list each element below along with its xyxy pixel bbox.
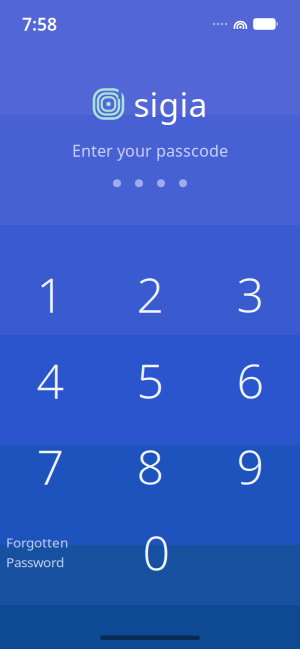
staticText: 9 [236, 434, 263, 498]
staticText: Enter your passcode [72, 140, 228, 161]
button[interactable]: 3 [200, 251, 300, 337]
staticText: Forgotten [6, 533, 68, 551]
button[interactable]: 1 [0, 251, 100, 337]
staticText: 1 [36, 262, 63, 326]
staticText: 2 [136, 262, 163, 326]
button[interactable]: 5 [100, 337, 200, 423]
staticText: 0 [142, 520, 169, 584]
staticText: Password [6, 553, 64, 571]
button[interactable]: 7 [0, 423, 100, 509]
button[interactable]: 2 [100, 251, 200, 337]
button[interactable]: Forgotten [0, 509, 106, 595]
button[interactable]: 4 [0, 337, 100, 423]
staticText: 4 [36, 348, 63, 412]
staticText: sigia [133, 82, 207, 126]
staticText: 3 [236, 262, 263, 326]
staticText: 6 [236, 348, 263, 412]
staticText: 7:58 [22, 12, 57, 35]
staticText: 5 [136, 348, 163, 412]
button[interactable]: 0 [106, 509, 206, 595]
button[interactable]: 9 [200, 423, 300, 509]
staticText: 8 [136, 434, 163, 498]
staticText: 7 [36, 434, 63, 498]
button[interactable]: 6 [200, 337, 300, 423]
button[interactable]: 8 [100, 423, 200, 509]
